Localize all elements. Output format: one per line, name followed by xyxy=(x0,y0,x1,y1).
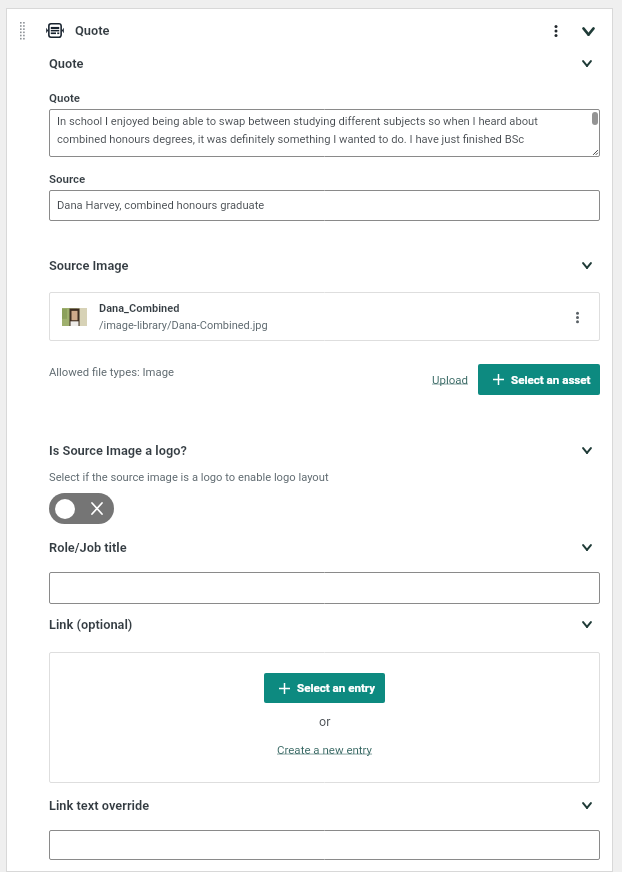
button[interactable]: Is Source Image a logo? xyxy=(49,441,600,460)
button[interactable]: Select an asset xyxy=(478,364,600,395)
button[interactable]: Upload xyxy=(432,368,469,391)
button[interactable]: Collapse section xyxy=(575,18,601,44)
button[interactable]: Link text override xyxy=(49,796,600,815)
staticText: In school I enjoyed being able to swap b… xyxy=(57,115,538,146)
staticText: Select if the source image is a logo to … xyxy=(49,471,329,484)
button[interactable] xyxy=(49,830,600,860)
staticText: Is Source Image a logo? xyxy=(49,443,187,458)
button[interactable]: Dana Harvey, combined honours graduate xyxy=(49,190,600,221)
button[interactable]: In school I enjoyed being able to swap b… xyxy=(49,109,600,157)
staticText: Role/Job title xyxy=(49,540,127,555)
staticText: Quote xyxy=(49,91,80,104)
staticText: Source xyxy=(49,172,86,185)
staticText: Dana_Combined xyxy=(99,302,180,315)
button[interactable]: Asset actions xyxy=(565,305,589,329)
button[interactable] xyxy=(49,572,600,604)
button[interactable]: Dana_Combined xyxy=(49,292,600,341)
button[interactable]: Quote xyxy=(49,54,600,73)
button[interactable]: Create a new entry xyxy=(277,743,373,756)
staticText: Select an entry xyxy=(297,681,376,695)
button[interactable]: Select an entry xyxy=(264,673,385,703)
button[interactable]: Is source image a logo, off xyxy=(49,493,114,524)
staticText: Create a new entry xyxy=(277,743,373,756)
staticText: Select an asset xyxy=(511,373,591,386)
button[interactable]: Link (optional) xyxy=(49,615,600,634)
button[interactable]: Role/Job title xyxy=(49,538,600,557)
staticText: Dana Harvey, combined honours graduate xyxy=(57,199,265,212)
button[interactable]: More options xyxy=(543,18,569,44)
staticText: Link text override xyxy=(49,798,150,813)
button[interactable]: Source Image xyxy=(49,256,600,275)
staticText: Quote xyxy=(49,56,84,71)
staticText: Source Image xyxy=(49,258,129,273)
staticText: Allowed file types: Image xyxy=(49,366,174,379)
staticText: or xyxy=(319,714,331,729)
staticText: /image-library/Dana-Combined.jpg xyxy=(99,319,268,332)
staticText: Link (optional) xyxy=(49,617,133,632)
staticText: Quote xyxy=(75,23,110,38)
staticText: Upload xyxy=(432,373,469,386)
